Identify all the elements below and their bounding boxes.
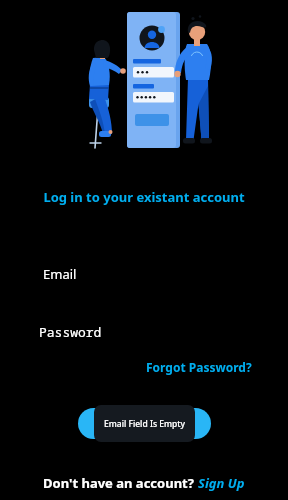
button[interactable]: Forgot Password? bbox=[146, 357, 288, 377]
staticText: Email Field Is Empty bbox=[104, 418, 186, 430]
staticText: Sign Up bbox=[198, 474, 245, 492]
button[interactable]: Email bbox=[0, 259, 288, 289]
staticText: Log in to your existant account bbox=[0, 188, 288, 206]
button[interactable]: Sign Up bbox=[198, 474, 245, 492]
button[interactable]: LOGIN bbox=[78, 408, 211, 439]
staticText: Password bbox=[39, 323, 102, 341]
staticText: Email bbox=[43, 265, 77, 283]
staticText: Don't have an account? bbox=[43, 474, 198, 492]
staticText: Forgot Password? bbox=[146, 359, 252, 375]
button[interactable]: Password bbox=[0, 317, 288, 347]
staticText: LOGIN bbox=[125, 416, 165, 432]
